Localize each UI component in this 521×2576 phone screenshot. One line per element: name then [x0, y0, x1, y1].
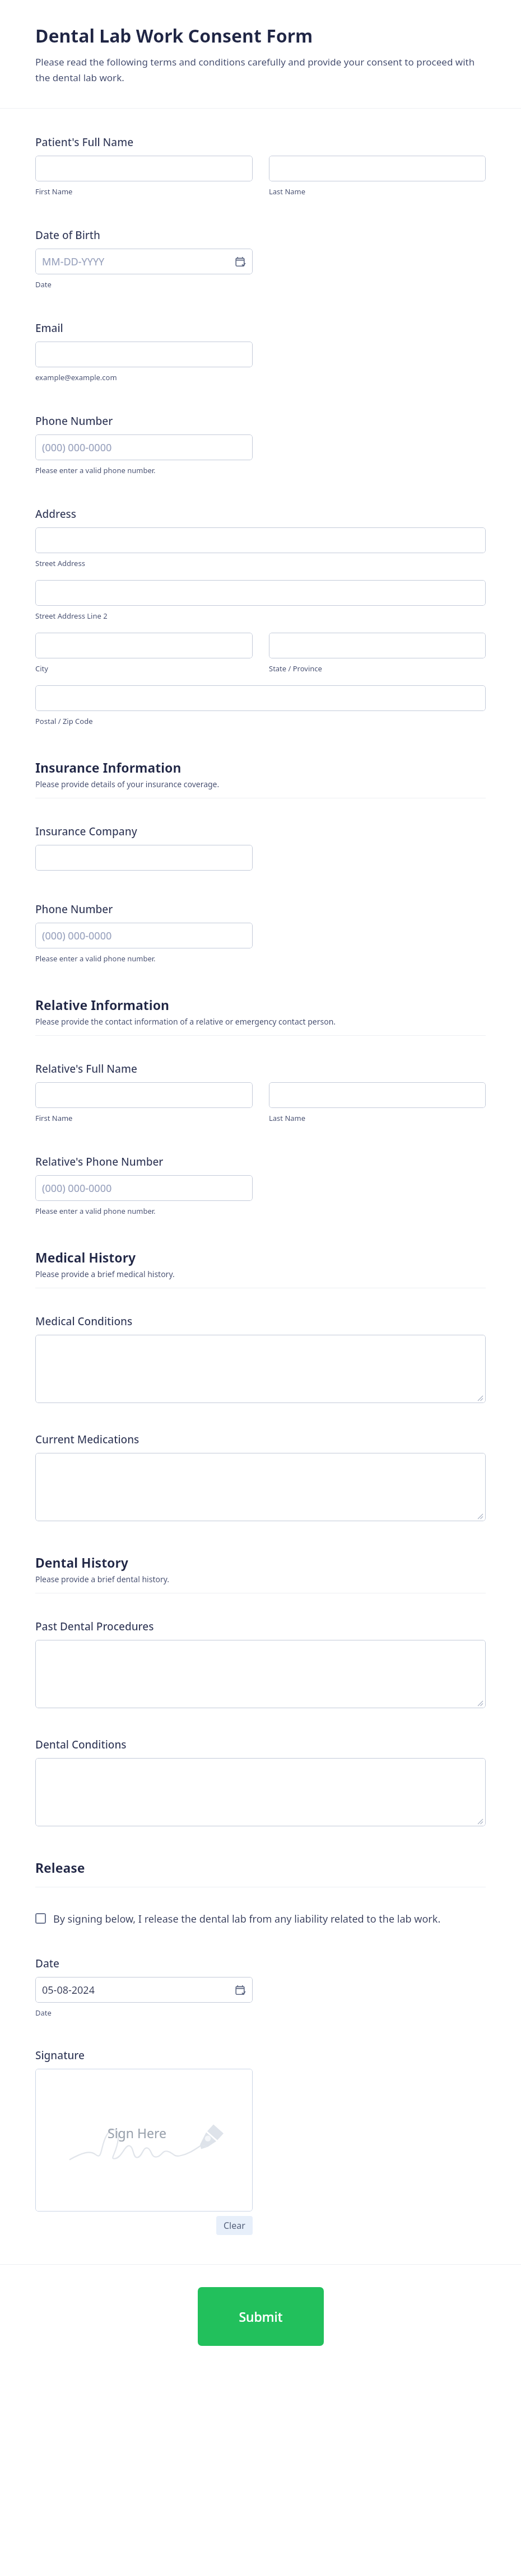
- staticText: Please enter a valid phone number.: [35, 1206, 156, 1216]
- button[interactable]: [35, 156, 253, 181]
- staticText: Insurance Information: [35, 759, 182, 776]
- staticText: Date of Birth: [35, 228, 100, 242]
- staticText: Submit: [239, 2308, 283, 2325]
- staticText: Phone Number: [35, 902, 113, 917]
- staticText: Dental Lab Work Consent Form: [35, 24, 313, 48]
- staticText: Please enter a valid phone number.: [35, 953, 156, 964]
- staticText: MM-DD-YYYY: [42, 255, 105, 269]
- button[interactable]: MM-DD-YYYY: [35, 249, 253, 274]
- button[interactable]: (000) 000-0000: [35, 923, 253, 948]
- button[interactable]: [269, 633, 486, 658]
- staticText: Insurance Company: [35, 824, 137, 839]
- staticText: 05-08-2024: [42, 1983, 95, 1997]
- button[interactable]: (000) 000-0000: [35, 1175, 253, 1201]
- staticText: Date: [35, 2008, 52, 2018]
- staticText: Medical Conditions: [35, 1314, 133, 1329]
- button[interactable]: Signature pad, sign here: [35, 2069, 253, 2212]
- staticText: City: [35, 663, 48, 674]
- staticText: Please provide the contact information o…: [35, 1016, 336, 1027]
- staticText: Street Address Line 2: [35, 611, 108, 621]
- staticText: Phone Number: [35, 414, 113, 428]
- staticText: Postal / Zip Code: [35, 716, 93, 726]
- staticText: Current Medications: [35, 1432, 139, 1447]
- staticText: (000) 000-0000: [42, 441, 112, 455]
- button[interactable]: [35, 1758, 486, 1826]
- staticText: Release: [35, 1859, 85, 1876]
- button[interactable]: Submit: [198, 2287, 324, 2346]
- staticText: Relative Information: [35, 996, 169, 1013]
- button[interactable]: By signing below, I release the dental l…: [35, 1912, 486, 1926]
- staticText: Please read the following terms and cond…: [35, 55, 486, 84]
- staticText: State / Province: [269, 663, 322, 674]
- staticText: Sign Here: [108, 2124, 166, 2142]
- staticText: Signature: [35, 2048, 85, 2063]
- button[interactable]: [35, 527, 486, 553]
- button[interactable]: [35, 845, 253, 871]
- staticText: Please provide details of your insurance…: [35, 779, 220, 789]
- button[interactable]: [269, 156, 486, 181]
- staticText: Patient's Full Name: [35, 135, 134, 149]
- staticText: Last Name: [269, 1113, 306, 1123]
- button[interactable]: [269, 1082, 486, 1108]
- staticText: Email: [35, 321, 63, 335]
- button[interactable]: [35, 685, 486, 711]
- button[interactable]: [35, 1453, 486, 1521]
- button[interactable]: [35, 1335, 486, 1403]
- staticText: Dental Conditions: [35, 1737, 127, 1752]
- button[interactable]: [35, 633, 253, 658]
- staticText: Address: [35, 507, 77, 521]
- staticText: Past Dental Procedures: [35, 1619, 154, 1634]
- other: Open calendar: [235, 1985, 246, 1995]
- button[interactable]: [35, 580, 486, 606]
- staticText: Date: [35, 1956, 59, 1971]
- button[interactable]: Clear: [216, 2216, 253, 2235]
- staticText: example@example.com: [35, 372, 117, 382]
- button[interactable]: 05-08-2024: [35, 1977, 253, 2003]
- staticText: Please provide a brief medical history.: [35, 1269, 175, 1279]
- staticText: First Name: [35, 1113, 73, 1123]
- staticText: Please enter a valid phone number.: [35, 465, 156, 475]
- staticText: Dental History: [35, 1554, 128, 1571]
- staticText: Street Address: [35, 558, 85, 568]
- staticText: Date: [35, 279, 52, 289]
- staticText: By signing below, I release the dental l…: [53, 1912, 441, 1926]
- button[interactable]: (000) 000-0000: [35, 434, 253, 460]
- staticText: Medical History: [35, 1249, 136, 1266]
- button[interactable]: [35, 1640, 486, 1708]
- staticText: Last Name: [269, 186, 306, 197]
- button[interactable]: [35, 1082, 253, 1108]
- staticText: (000) 000-0000: [42, 929, 112, 943]
- other: Open calendar: [235, 256, 246, 267]
- staticText: Relative's Full Name: [35, 1062, 137, 1076]
- staticText: First Name: [35, 186, 73, 197]
- staticText: Clear: [224, 2219, 245, 2232]
- staticText: Relative's Phone Number: [35, 1154, 164, 1169]
- button[interactable]: [35, 342, 253, 367]
- staticText: (000) 000-0000: [42, 1181, 112, 1195]
- staticText: Please provide a brief dental history.: [35, 1574, 170, 1584]
